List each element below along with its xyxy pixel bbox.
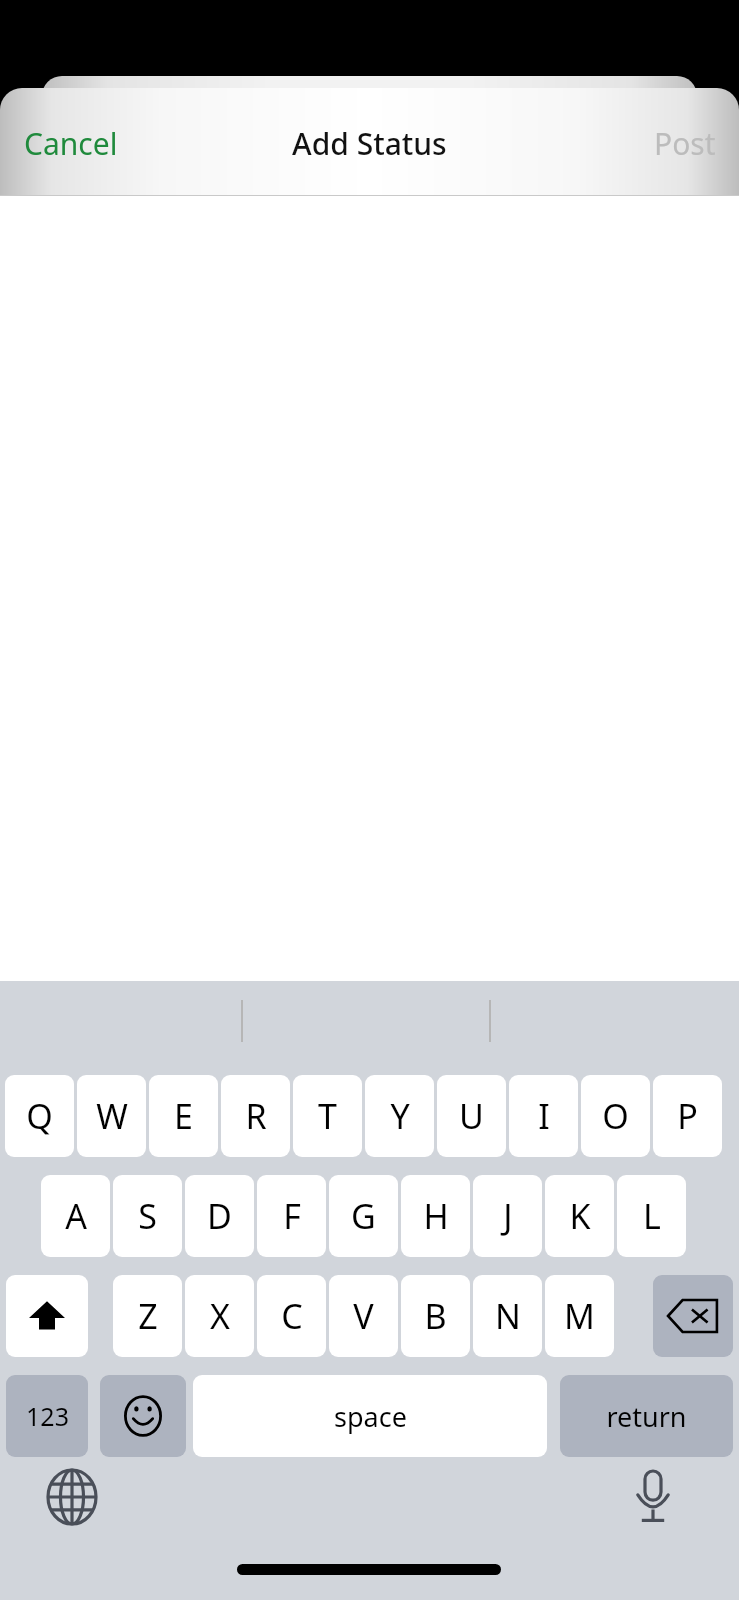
staticText: E <box>174 1093 193 1139</box>
staticText: T <box>318 1093 337 1139</box>
staticText: P <box>677 1093 698 1139</box>
button[interactable]: 123 <box>6 1375 88 1457</box>
staticText: B <box>424 1293 447 1339</box>
button[interactable]: Backspace <box>653 1275 733 1357</box>
button[interactable]: J <box>473 1175 542 1257</box>
button[interactable]: M <box>545 1275 614 1357</box>
button[interactable]: U <box>437 1075 506 1157</box>
staticText: N <box>495 1293 521 1339</box>
button[interactable]: S <box>113 1175 182 1257</box>
button[interactable]: Post <box>612 112 716 174</box>
staticText: O <box>602 1093 629 1139</box>
staticText: Y <box>390 1093 410 1139</box>
button[interactable]: Y <box>365 1075 434 1157</box>
button[interactable]: O <box>581 1075 650 1157</box>
button[interactable]: V <box>329 1275 398 1357</box>
staticText: Cancel <box>24 123 118 164</box>
staticText: S <box>138 1193 157 1239</box>
staticText: J <box>503 1193 513 1239</box>
button[interactable]: B <box>401 1275 470 1357</box>
button[interactable]: X <box>185 1275 254 1357</box>
staticText: V <box>353 1293 374 1339</box>
staticText: return <box>606 1398 687 1435</box>
button[interactable]: space <box>193 1375 547 1457</box>
button[interactable]: W <box>77 1075 146 1157</box>
staticText: F <box>283 1193 301 1239</box>
button[interactable]: H <box>401 1175 470 1257</box>
button[interactable]: R <box>221 1075 290 1157</box>
button[interactable]: Shift <box>6 1275 88 1357</box>
staticText: X <box>210 1293 230 1339</box>
staticText: Q <box>26 1093 53 1139</box>
button[interactable]: Z <box>113 1275 182 1357</box>
staticText: Z <box>138 1293 158 1339</box>
staticText: K <box>569 1193 591 1239</box>
staticText: H <box>423 1193 449 1239</box>
button[interactable]: C <box>257 1275 326 1357</box>
button[interactable]: Q <box>5 1075 74 1157</box>
staticText: C <box>281 1293 303 1339</box>
staticText: L <box>643 1193 661 1239</box>
button[interactable]: Dictate <box>617 1461 689 1533</box>
staticText: I <box>538 1093 550 1139</box>
button[interactable]: T <box>293 1075 362 1157</box>
button[interactable]: P <box>653 1075 722 1157</box>
button[interactable]: return <box>560 1375 733 1457</box>
staticText: D <box>207 1193 232 1239</box>
button[interactable]: F <box>257 1175 326 1257</box>
button[interactable]: G <box>329 1175 398 1257</box>
staticText: Add Status <box>292 123 447 164</box>
button[interactable]: N <box>473 1275 542 1357</box>
button[interactable]: Switch keyboard language <box>32 1461 112 1533</box>
button[interactable]: A <box>41 1175 110 1257</box>
staticText: space <box>334 1398 407 1435</box>
button[interactable]: I <box>509 1075 578 1157</box>
button[interactable]: D <box>185 1175 254 1257</box>
button[interactable]: E <box>149 1075 218 1157</box>
staticText: A <box>65 1193 87 1239</box>
button[interactable]: K <box>545 1175 614 1257</box>
button[interactable]: Cancel <box>24 112 148 174</box>
staticText: Post <box>654 123 716 164</box>
staticText: M <box>564 1293 595 1339</box>
staticText: 123 <box>26 1399 69 1433</box>
button[interactable]: Emoji <box>100 1375 186 1457</box>
staticText: U <box>459 1093 484 1139</box>
staticText: W <box>96 1093 128 1139</box>
staticText: G <box>351 1193 376 1239</box>
staticText: R <box>245 1093 267 1139</box>
button[interactable]: L <box>617 1175 686 1257</box>
